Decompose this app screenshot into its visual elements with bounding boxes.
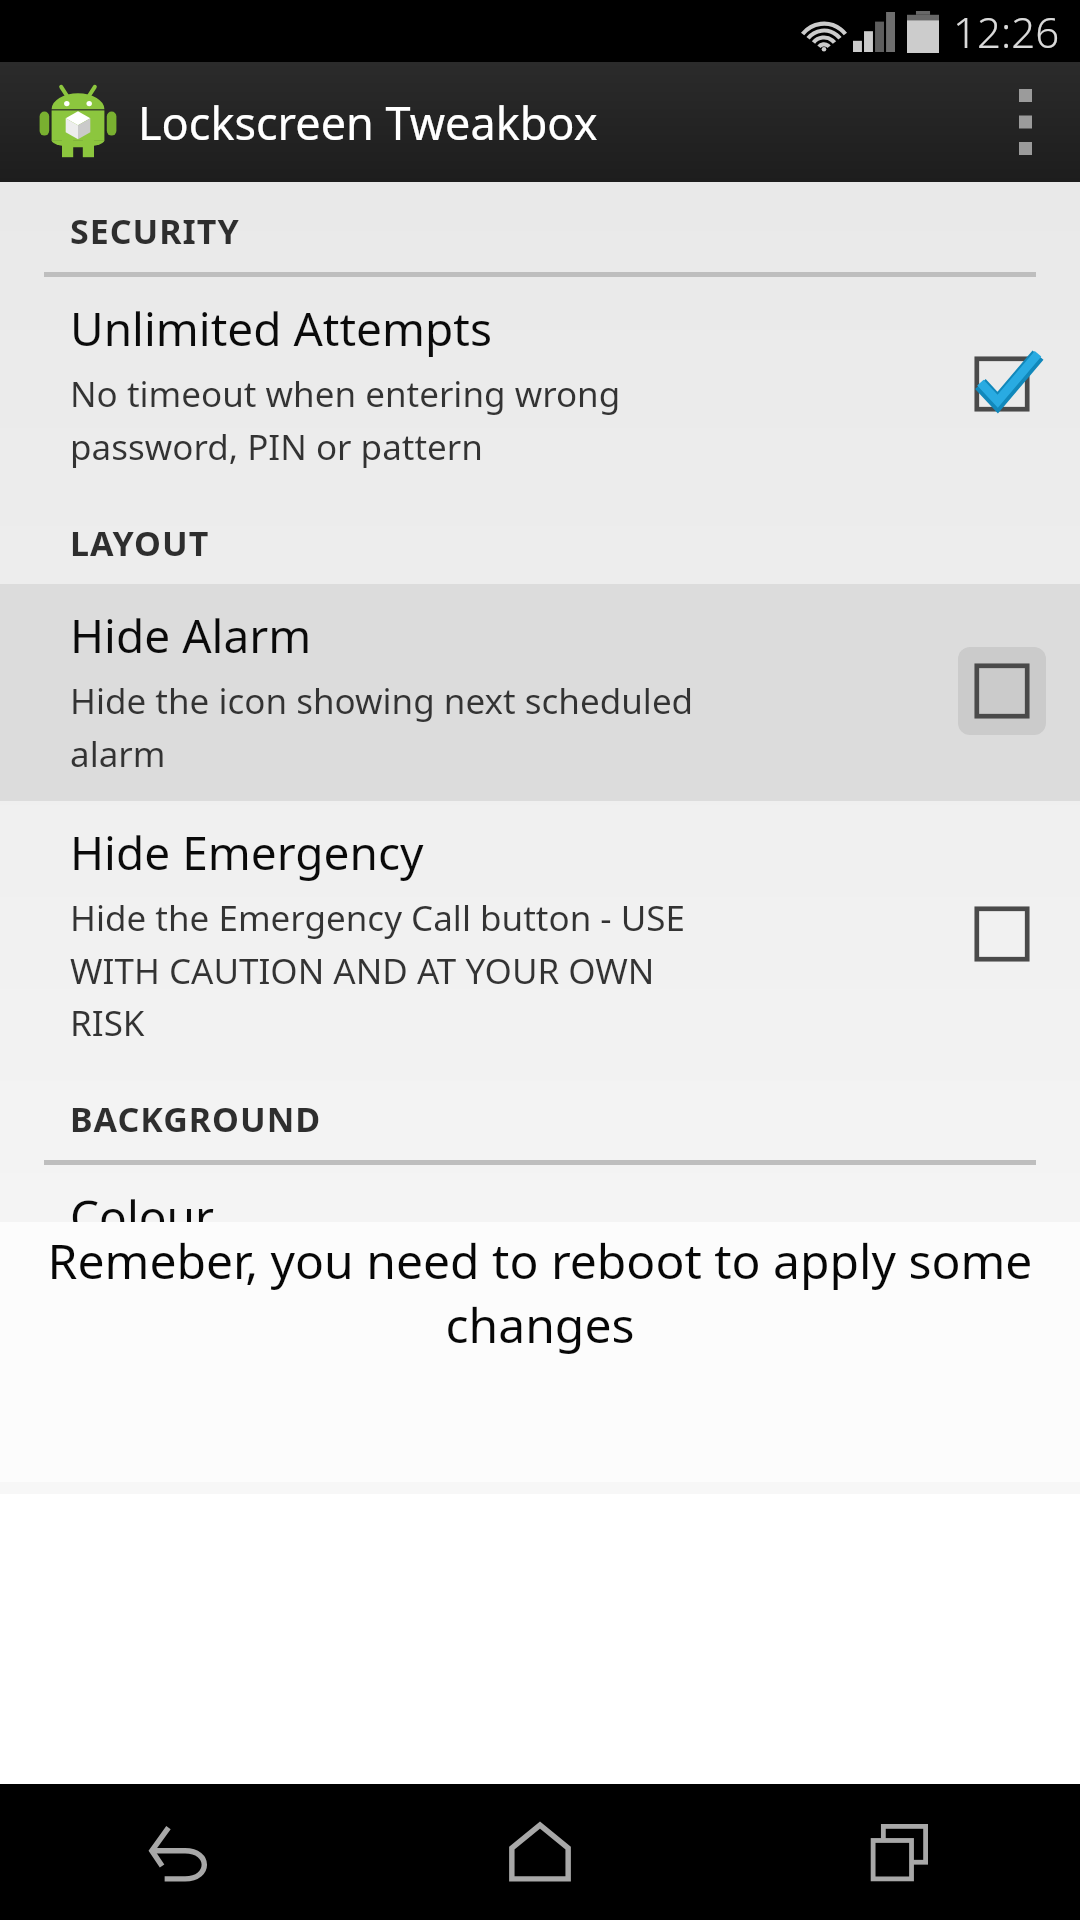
- staticText: No timeout when entering wrong password,…: [70, 370, 621, 470]
- staticText: Remeber, you need to reboot to apply som…: [20, 1228, 1060, 1357]
- button[interactable]: Unchecked: [950, 1220, 1054, 1324]
- staticText: LAYOUT: [70, 520, 210, 566]
- staticText: Hide the icon showing next scheduled ala…: [70, 677, 694, 777]
- staticText: Use a custom colour for lockscreen backg…: [70, 1258, 646, 1358]
- button[interactable]: Recent apps: [720, 1784, 1080, 1920]
- button[interactable]: Hide Alarm: [0, 584, 1080, 801]
- button[interactable]: Unchecked: [950, 639, 1054, 743]
- button[interactable]: Colour: [0, 1165, 1080, 1382]
- button[interactable]: Unchecked: [950, 882, 1054, 986]
- button[interactable]: Unlimited Attempts: [0, 277, 1080, 494]
- staticText: Hide Emergency: [70, 821, 424, 884]
- staticText: Lockscreen Tweakbox: [138, 92, 598, 153]
- button[interactable]: Home: [360, 1784, 720, 1920]
- staticText: SECURITY: [70, 208, 240, 254]
- button[interactable]: Back: [0, 1784, 360, 1920]
- staticText: Hide Alarm: [70, 604, 312, 667]
- staticText: Unlimited Attempts: [70, 297, 492, 360]
- staticText: 12:26: [953, 3, 1060, 60]
- staticText: BACKGROUND: [70, 1096, 322, 1142]
- button[interactable]: More options: [970, 62, 1080, 182]
- button[interactable]: Checked: [950, 332, 1054, 436]
- staticText: Hide the Emergency Call button - USE WIT…: [70, 894, 685, 1046]
- staticText: Colour: [70, 1185, 215, 1248]
- button[interactable]: Hide Emergency: [0, 801, 1080, 1070]
